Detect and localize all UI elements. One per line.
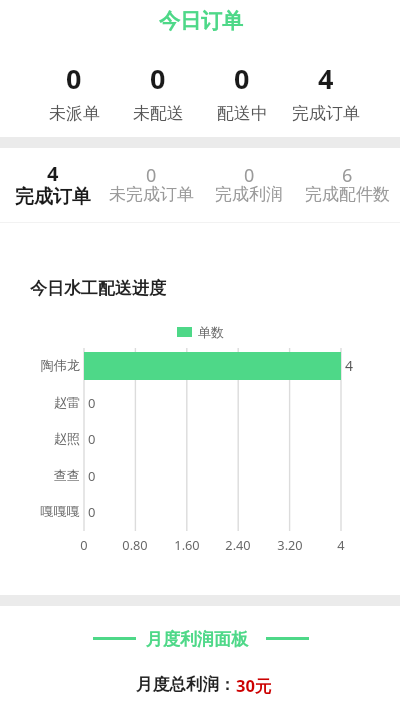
staticText: 0 — [150, 60, 166, 97]
staticText: 查查 — [0, 467, 80, 484]
staticText: 2.40 — [208, 536, 268, 553]
staticText: 4 — [311, 536, 371, 553]
staticText: 4 — [47, 160, 59, 184]
staticText: 今日水工配送进度 — [30, 278, 166, 299]
staticText: 4 — [345, 356, 354, 375]
staticText: 未配送 — [133, 103, 184, 124]
staticText: 3.20 — [260, 536, 320, 553]
staticText: 今日订单 — [1, 8, 400, 34]
button[interactable]: 单数 图例 — [177, 324, 224, 340]
staticText: 0 — [88, 430, 96, 448]
staticText: 配送中 — [217, 103, 268, 124]
staticText: 0 — [88, 394, 96, 412]
staticText: 0 — [88, 467, 96, 485]
staticText: 完成利润 — [215, 184, 283, 205]
button[interactable]: 0 — [32, 60, 116, 711]
staticText: 0 — [66, 60, 82, 97]
button[interactable]: 0 — [116, 60, 200, 711]
staticText: 0 — [234, 60, 250, 97]
staticText: 0 — [54, 536, 114, 553]
staticText: 完成订单 — [15, 185, 91, 209]
staticText: 陶伟龙 — [0, 357, 80, 374]
staticText: 0 — [146, 163, 157, 187]
button[interactable]: 0 — [102, 161, 200, 711]
button[interactable]: 6 — [298, 161, 396, 711]
staticText: 单数 — [198, 324, 224, 340]
button[interactable]: 4 — [284, 60, 368, 711]
staticText: 赵雷 — [0, 394, 80, 411]
button[interactable]: 赵照 — [0, 421, 400, 458]
staticText: 月度利润面板 — [146, 629, 248, 650]
staticText: 赵照 — [0, 430, 80, 447]
staticText: 1.60 — [157, 536, 217, 553]
button[interactable]: 赵雷 — [0, 384, 400, 421]
staticText: 30元 — [236, 674, 272, 697]
staticText: 完成订单 — [292, 103, 360, 124]
button[interactable]: 嘎嘎嘎 — [0, 494, 400, 531]
staticText: 0 — [244, 163, 255, 187]
staticText: 0.80 — [105, 536, 165, 553]
button[interactable]: 0 — [200, 161, 298, 711]
button[interactable]: 0 — [200, 60, 284, 711]
button[interactable]: 4 — [4, 161, 102, 711]
staticText: 嘎嘎嘎 — [0, 503, 80, 520]
staticText: 0 — [88, 503, 96, 521]
staticText: 完成配件数 — [305, 184, 390, 205]
staticText: 未派单 — [49, 103, 100, 124]
button[interactable]: 查查 — [0, 458, 400, 495]
staticText: 未完成订单 — [109, 184, 194, 205]
staticText: 6 — [342, 163, 353, 187]
button[interactable]: 陶伟龙 — [0, 348, 400, 385]
staticText: 4 — [318, 60, 334, 97]
staticText: 月度总利润： — [136, 674, 236, 695]
